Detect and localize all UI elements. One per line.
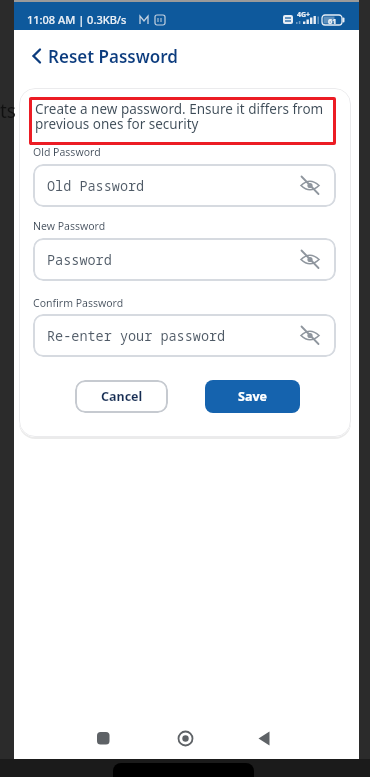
staticText: Create a new password. Ensure it differs…: [35, 100, 324, 118]
staticText: Old Password: [33, 145, 101, 159]
staticText: Reset Password: [48, 45, 178, 68]
staticText: Password: [47, 251, 112, 269]
staticText: 61: [328, 16, 337, 26]
staticText: 11:08 AM | 0.3KB/s: [27, 12, 127, 27]
staticText: Old Password: [47, 177, 145, 195]
staticText: Re-enter your password: [47, 327, 226, 345]
staticText: Save: [238, 388, 267, 405]
staticText: Cancel: [101, 388, 143, 405]
staticText: 4G+: [297, 10, 311, 20]
staticText: previous ones for security: [35, 115, 199, 133]
staticText: Confirm Password: [33, 296, 124, 310]
staticText: ts: [0, 98, 16, 124]
staticText: New Password: [33, 219, 106, 233]
